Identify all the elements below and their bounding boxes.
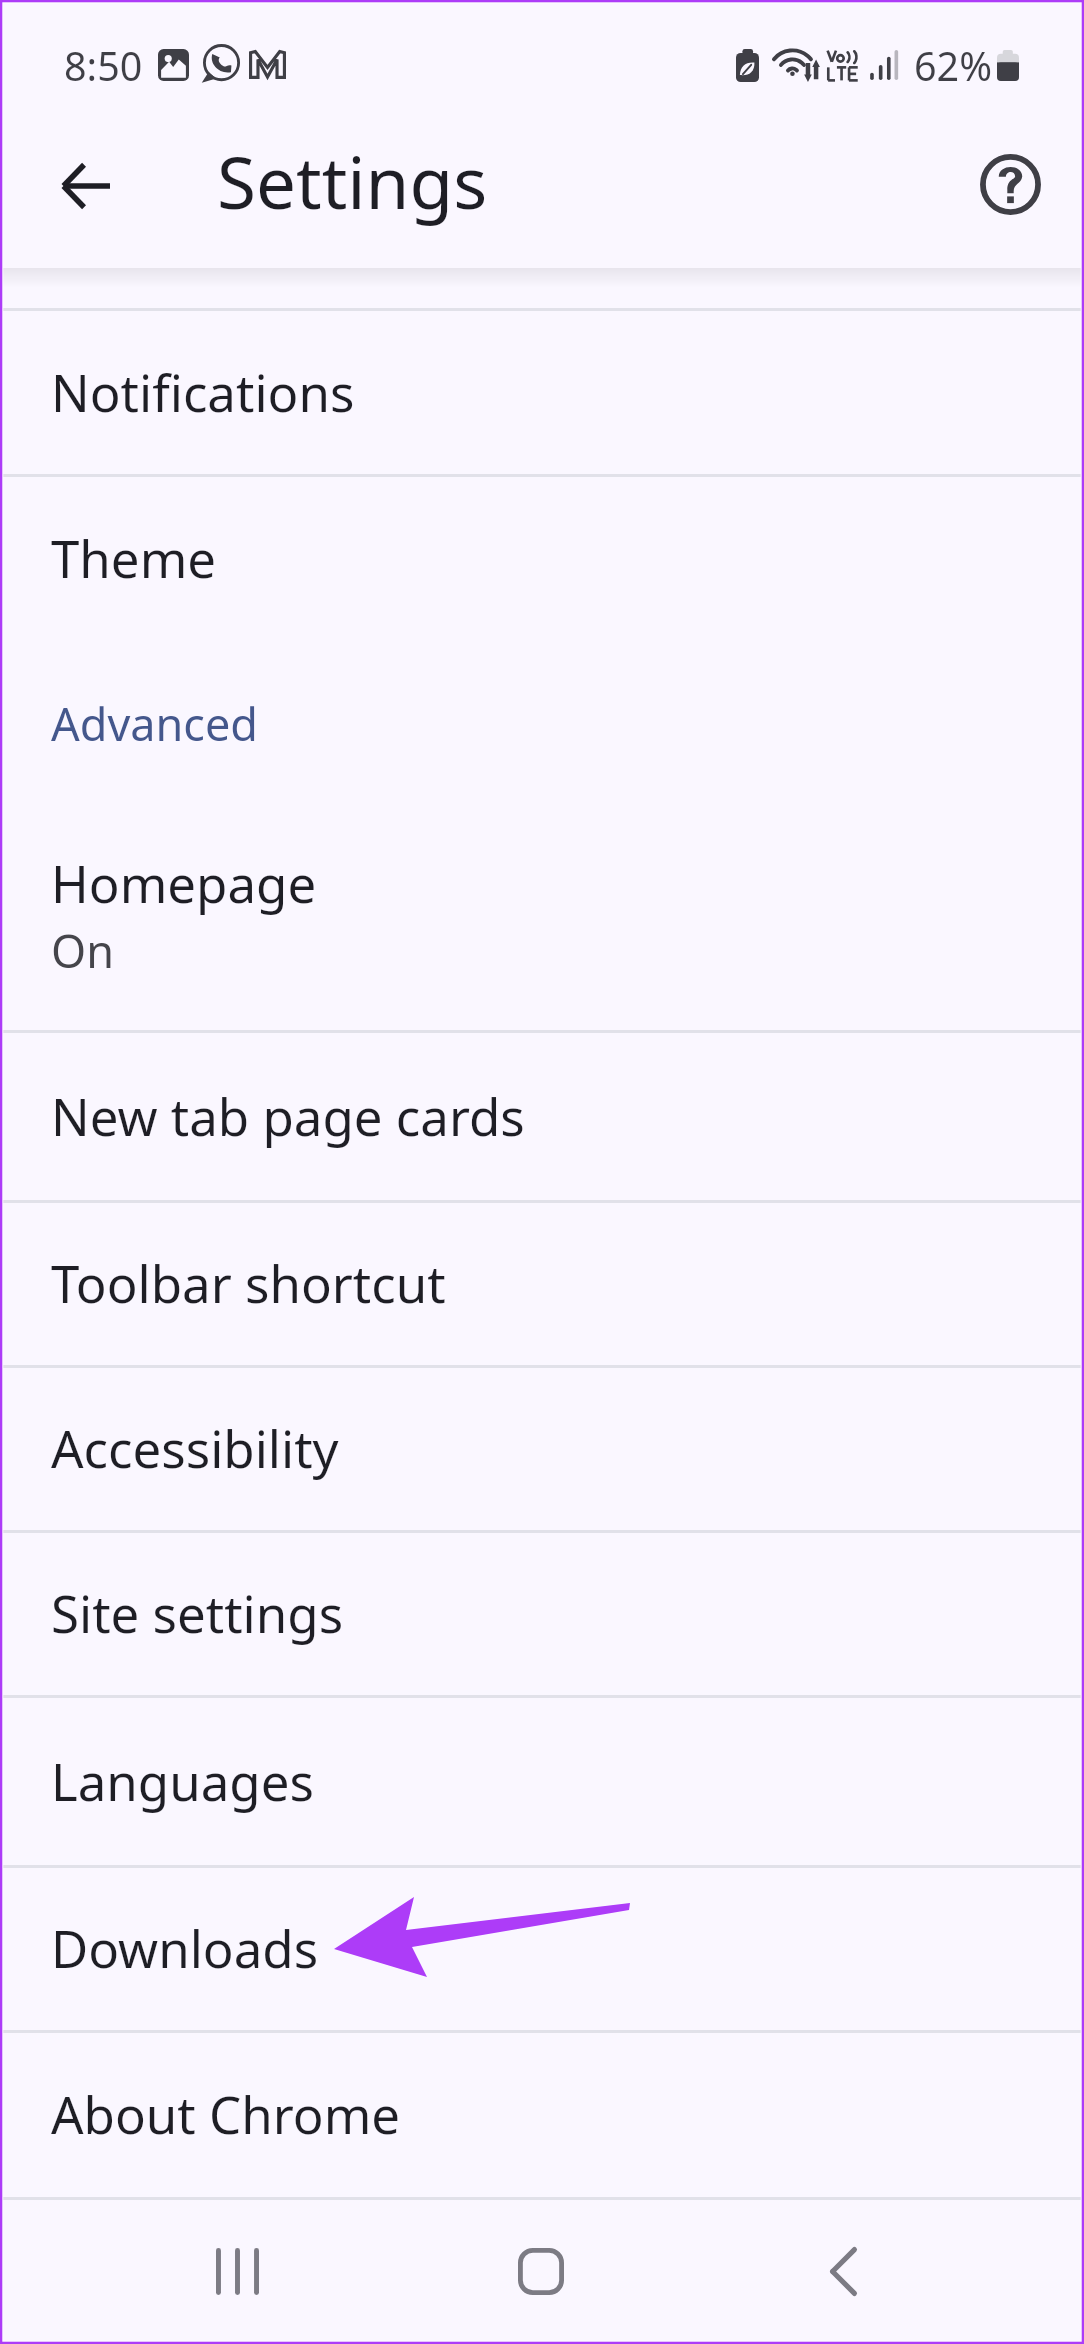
staticText: Toolbar shortcut — [51, 1248, 446, 1317]
staticText: Theme — [51, 523, 217, 592]
staticText: Site settings — [51, 1578, 344, 1647]
button[interactable]: Toolbar shortcut — [0, 1200, 1084, 1365]
button[interactable]: Accessibility — [0, 1365, 1084, 1530]
staticText: About Chrome — [51, 2079, 401, 2148]
staticText: Homepage — [51, 848, 317, 917]
button[interactable]: Back — [723, 2200, 1084, 2344]
button[interactable]: Homepage — [0, 804, 1084, 1030]
staticText: On — [51, 920, 114, 981]
staticText: Advanced — [51, 693, 259, 754]
button[interactable]: Languages — [0, 1695, 1084, 1865]
button[interactable]: About Chrome — [0, 2030, 1084, 2197]
button[interactable]: New tab page cards — [0, 1030, 1084, 1200]
button[interactable]: Home — [362, 2200, 723, 2344]
staticText: Languages — [51, 1746, 314, 1815]
staticText: 62% — [914, 39, 993, 93]
staticText: Downloads — [51, 1913, 319, 1982]
staticText: 8:50 — [64, 39, 143, 93]
staticText: Settings — [217, 133, 488, 230]
button[interactable]: Notifications — [0, 308, 1084, 474]
button[interactable]: Back — [37, 137, 134, 234]
button[interactable]: Recent apps — [0, 2200, 362, 2344]
button[interactable]: Site settings — [0, 1530, 1084, 1695]
button[interactable]: Help — [962, 136, 1059, 233]
staticText: New tab page cards — [51, 1081, 525, 1150]
button[interactable]: Downloads — [0, 1865, 1084, 2030]
staticText: Accessibility — [51, 1413, 339, 1482]
staticText: Notifications — [51, 357, 355, 426]
button[interactable]: Theme — [0, 474, 1084, 641]
